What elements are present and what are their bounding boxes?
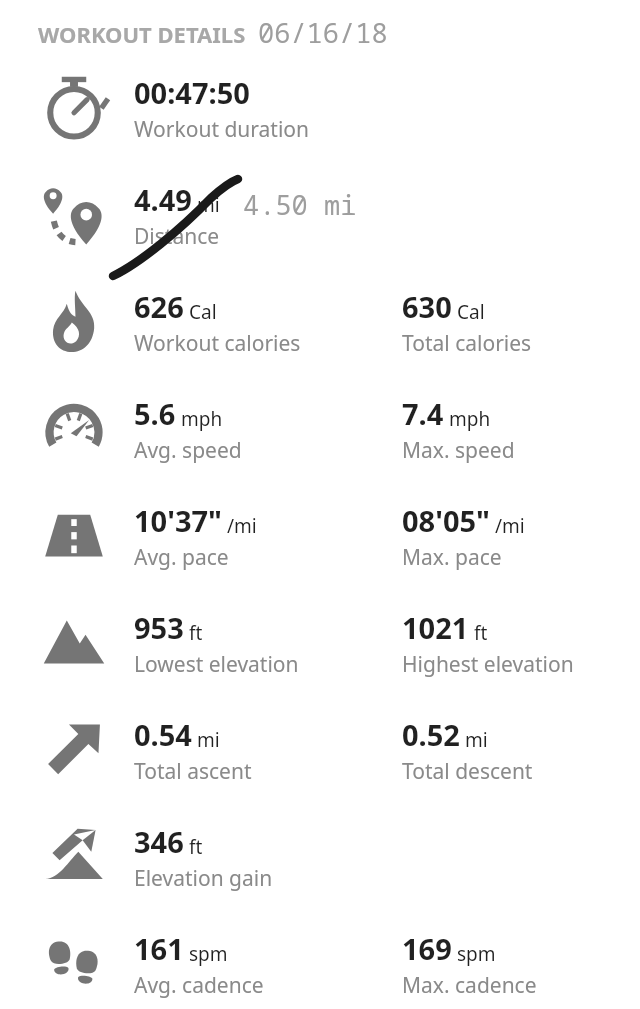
staticText: 953 (134, 608, 184, 647)
button[interactable]: WORKOUT DETAILS (38, 12, 640, 49)
staticText: Total ascent (134, 757, 252, 786)
staticText: /mi (227, 513, 257, 539)
other: Cadence (38, 927, 110, 999)
staticText: Highest elevation (402, 650, 574, 679)
button[interactable]: Ascent and descent (0, 703, 640, 810)
staticText: 5.6 (134, 394, 176, 433)
staticText: 7.4 (402, 394, 444, 433)
staticText: ft (474, 620, 488, 646)
staticText: 630 (402, 287, 452, 326)
staticText: ft (189, 620, 203, 646)
button[interactable]: Workout duration (0, 61, 640, 168)
staticText: Max. pace (402, 543, 502, 572)
staticText: WORKOUT DETAILS (38, 19, 246, 49)
staticText: Lowest elevation (134, 650, 299, 679)
staticText: Elevation gain (134, 864, 273, 893)
staticText: 08'05" (402, 501, 490, 540)
staticText: 346 (134, 822, 184, 861)
staticText: 1021 (402, 608, 469, 647)
staticText: Workout duration (134, 115, 310, 144)
staticText: Avg. cadence (134, 971, 264, 1000)
staticText: Cal (189, 299, 217, 325)
other: Ascent and descent (38, 713, 110, 785)
staticText: mi (197, 192, 220, 218)
staticText: 0.54 (134, 715, 192, 754)
staticText: /mi (495, 513, 525, 539)
button[interactable]: Cadence (0, 917, 640, 1009)
staticText: 169 (402, 929, 452, 968)
other: Calories (38, 285, 110, 357)
staticText: 00:47:50 (134, 73, 250, 112)
staticText: 161 (134, 929, 184, 968)
button[interactable]: Calories (0, 275, 640, 382)
button[interactable]: Distance (0, 168, 640, 275)
staticText: Avg. speed (134, 436, 242, 465)
staticText: Distance (134, 222, 220, 251)
staticText: 4.50 mi (243, 186, 357, 223)
staticText: Max. speed (402, 436, 515, 465)
other: Elevation (38, 606, 110, 678)
other: Speed (38, 392, 110, 464)
staticText: Total calories (402, 329, 532, 358)
staticText: Total descent (402, 757, 533, 786)
button[interactable]: Pace (0, 489, 640, 596)
staticText: 4.49 (134, 180, 192, 219)
staticText: mi (197, 727, 220, 753)
other: Distance (38, 178, 110, 250)
staticText: spm (189, 941, 228, 967)
staticText: ft (189, 834, 203, 860)
button[interactable]: Elevation (0, 596, 640, 703)
staticText: Workout calories (134, 329, 301, 358)
staticText: 0.52 (402, 715, 460, 754)
other: Pace (38, 499, 110, 571)
staticText: Cal (457, 299, 485, 325)
staticText: Avg. pace (134, 543, 229, 572)
staticText: mph (181, 406, 223, 432)
other: Elevation gain (38, 820, 110, 892)
staticText: mi (465, 727, 488, 753)
staticText: Max. cadence (402, 971, 537, 1000)
button[interactable]: Elevation gain (0, 810, 640, 917)
staticText: 626 (134, 287, 184, 326)
staticText: spm (457, 941, 496, 967)
staticText: 10'37" (134, 501, 222, 540)
other: Workout duration (38, 71, 110, 143)
button[interactable]: Speed (0, 382, 640, 489)
staticText: 06/16/18 (258, 14, 388, 51)
staticText: mph (449, 406, 491, 432)
